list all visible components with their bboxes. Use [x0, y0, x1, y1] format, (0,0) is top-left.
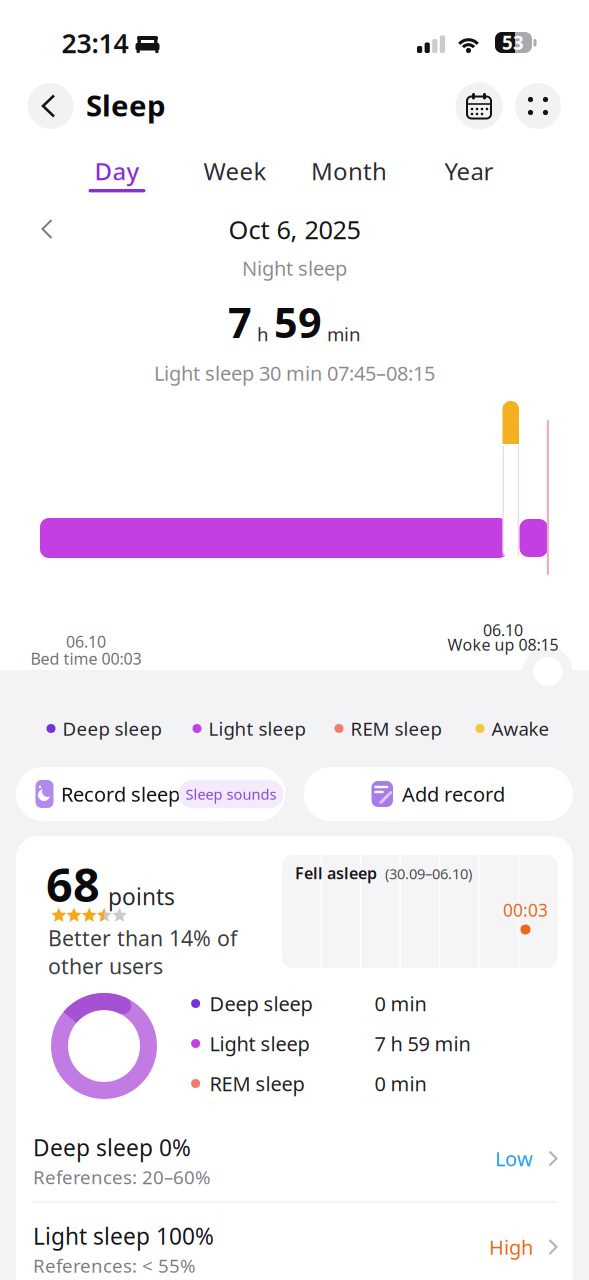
staticText: REM sleep: [350, 716, 441, 741]
staticText: 53: [502, 30, 524, 55]
staticText: 00:03: [503, 898, 548, 921]
staticText: 0 min: [374, 1070, 426, 1097]
button[interactable]: Light sleep 100%: [24, 1207, 565, 1280]
staticText: 59: [274, 295, 322, 349]
staticText: Bed time 00:03: [30, 648, 141, 669]
staticText: min: [327, 322, 361, 346]
staticText: Month: [311, 155, 387, 187]
staticText: REM sleep: [209, 1070, 304, 1097]
staticText: 68: [46, 853, 100, 915]
staticText: Week: [203, 155, 266, 187]
staticText: points: [108, 881, 175, 911]
staticText: 06.10: [66, 631, 106, 652]
staticText: 7: [228, 295, 252, 349]
button[interactable]: Calendar: [455, 82, 502, 129]
staticText: Deep sleep: [62, 716, 161, 741]
staticText: other users: [48, 952, 163, 980]
staticText: Year: [444, 155, 493, 187]
button[interactable]: Month: [301, 151, 397, 191]
button[interactable]: Record sleep: [16, 767, 285, 821]
staticText: Woke up 08:15: [447, 634, 558, 655]
staticText: Better than 14% of: [48, 924, 237, 952]
staticText: Sleep: [86, 85, 166, 124]
button[interactable]: Add record: [303, 767, 573, 821]
staticText: References: 20–60%: [33, 1165, 211, 1189]
staticText: 23:14: [61, 25, 128, 61]
button[interactable]: Week: [190, 151, 280, 191]
staticText: Deep sleep: [209, 990, 312, 1017]
button[interactable]: Day: [72, 151, 162, 191]
button[interactable]: More: [515, 83, 561, 129]
button[interactable]: Deep sleep 0%: [24, 1118, 565, 1198]
staticText: h: [257, 322, 269, 346]
staticText: Light sleep 100%: [33, 1221, 214, 1251]
staticText: Deep sleep 0%: [33, 1132, 191, 1162]
staticText: Awake: [491, 716, 549, 741]
staticText: Light sleep: [208, 716, 305, 741]
staticText: 7 h 59 min: [374, 1030, 470, 1057]
staticText: Fell asleep: [295, 862, 377, 884]
button[interactable]: Year: [424, 151, 514, 191]
staticText: High: [489, 1234, 533, 1260]
staticText: (30.09–06.10): [385, 864, 472, 883]
staticText: References: < 55%: [33, 1253, 196, 1278]
staticText: Light sleep: [209, 1030, 309, 1057]
staticText: Low: [495, 1145, 533, 1172]
staticText: 06.10: [483, 619, 523, 641]
staticText: Oct 6, 2025: [228, 213, 360, 246]
staticText: Add record: [402, 781, 505, 807]
staticText: 0 min: [374, 990, 426, 1017]
staticText: Day: [94, 155, 139, 187]
staticText: Light sleep 30 min 07:45–08:15: [154, 360, 435, 386]
staticText: Sleep sounds: [185, 784, 276, 804]
staticText: Night sleep: [242, 255, 347, 281]
staticText: Record sleep: [61, 781, 180, 807]
button[interactable]: Back: [27, 83, 73, 129]
button[interactable]: Previous day: [32, 214, 62, 244]
